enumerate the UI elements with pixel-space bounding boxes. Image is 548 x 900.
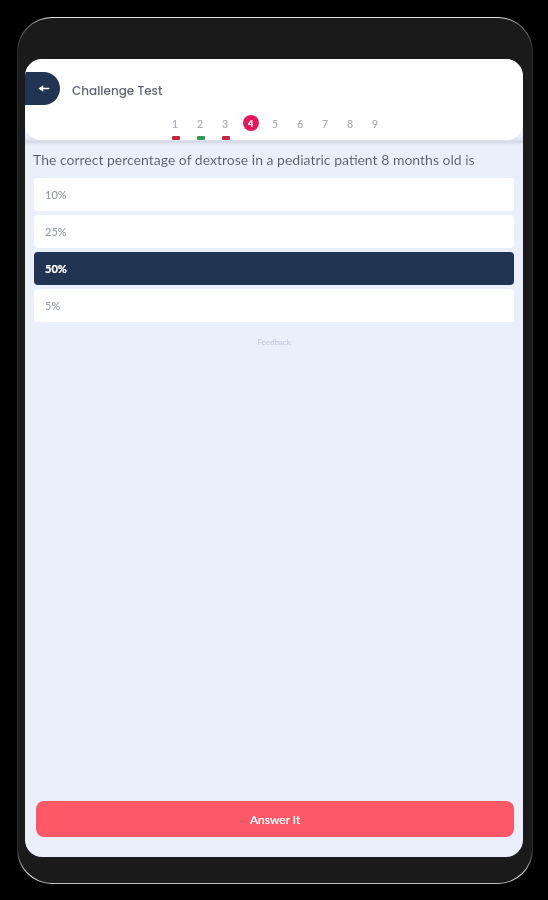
staticText: 8 <box>347 118 354 131</box>
staticText: 2 <box>197 118 204 131</box>
staticText: 4 <box>248 118 254 129</box>
staticText: 10% <box>45 188 67 201</box>
staticText: 3 <box>222 118 229 131</box>
button[interactable]: 6 <box>288 117 313 140</box>
staticText: 25% <box>45 225 67 238</box>
button[interactable]: 25% <box>34 215 514 248</box>
button[interactable]: 8 <box>338 117 363 140</box>
staticText: Answer It <box>250 812 301 826</box>
button[interactable]: 3 <box>213 117 238 140</box>
staticText: 7 <box>322 118 329 131</box>
button[interactable]: 1 <box>163 117 188 140</box>
staticText: Challenge Test <box>72 82 163 99</box>
button[interactable]: 5 <box>263 117 288 140</box>
button[interactable]: 10% <box>34 178 514 211</box>
staticText: 1 <box>172 118 179 131</box>
button[interactable]: 2 <box>188 117 213 140</box>
button[interactable]: 4 <box>238 117 263 140</box>
staticText: 5 <box>272 118 279 131</box>
button[interactable]: 50% <box>34 252 514 285</box>
button[interactable]: Back <box>25 72 60 105</box>
staticText: 9 <box>372 118 379 131</box>
staticText: 6 <box>297 118 304 131</box>
staticText: 50% <box>45 262 67 275</box>
staticText: 5% <box>45 299 61 312</box>
staticText: Feedback <box>25 337 523 347</box>
button[interactable]: Answer It <box>36 801 514 837</box>
button[interactable]: 9 <box>363 117 388 140</box>
button[interactable]: 7 <box>313 117 338 140</box>
staticText: The correct percentage of dextrose in a … <box>33 151 475 168</box>
button[interactable]: 5% <box>34 289 514 322</box>
